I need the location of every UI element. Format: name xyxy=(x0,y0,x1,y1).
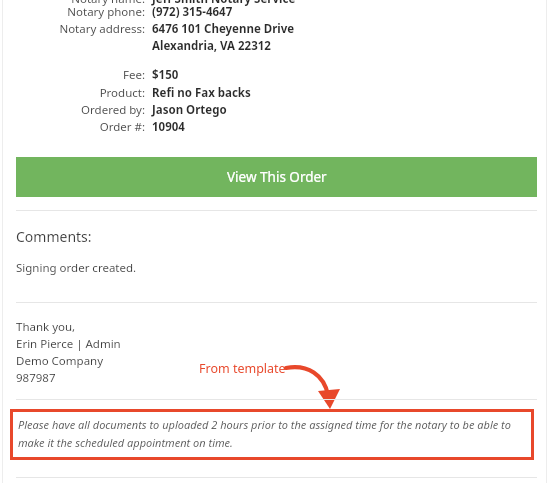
staticText: (972) 315-4647 xyxy=(152,4,233,20)
staticText: Jason Ortego xyxy=(152,102,227,118)
staticText: 6476 101 Cheyenne Drive xyxy=(152,21,295,37)
button[interactable]: View This Order xyxy=(16,157,537,197)
staticText: Notary phone: xyxy=(0,4,145,20)
staticText: Demo Company xyxy=(16,353,104,370)
staticText: Notary name: xyxy=(0,0,145,7)
staticText: $150 xyxy=(152,67,179,83)
staticText: Signing order created. xyxy=(16,260,137,276)
staticText: Notary address: xyxy=(0,21,145,37)
staticText: make it the scheduled appointment on tim… xyxy=(18,435,233,450)
staticText: View This Order xyxy=(227,168,327,186)
staticText: Order #: xyxy=(0,119,145,135)
staticText: 987987 xyxy=(16,370,56,387)
staticText: Thank you, xyxy=(16,319,76,336)
staticText: From template xyxy=(199,360,286,377)
staticText: Please have all documents to uploaded 2 … xyxy=(18,417,511,432)
staticText: Comments: xyxy=(16,227,92,246)
staticText: Alexandria, VA 22312 xyxy=(152,38,271,54)
staticText: 10904 xyxy=(152,119,185,135)
staticText: Product: xyxy=(0,85,145,101)
staticText: Jeff Smith Notary Service xyxy=(152,0,296,7)
staticText: Ordered by: xyxy=(0,102,145,118)
staticText: Fee: xyxy=(0,67,145,83)
staticText: Erin Pierce | Admin xyxy=(16,336,121,353)
staticText: Refi no Fax backs xyxy=(152,85,251,101)
